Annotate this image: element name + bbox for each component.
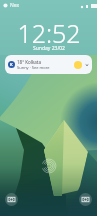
staticText: Sunny · See more	[17, 65, 50, 70]
staticText: 12:52	[17, 16, 81, 50]
staticText: 18° Kolkata	[17, 59, 41, 65]
button[interactable]: Fingerprint unlock	[41, 158, 57, 174]
button[interactable]: Camera	[5, 193, 18, 206]
button[interactable]: Camera	[79, 193, 92, 206]
button[interactable]: K	[5, 55, 92, 74]
staticText: Sunday 23/02	[33, 45, 65, 52]
staticText: Nex	[10, 2, 20, 9]
staticText: K	[10, 62, 13, 67]
